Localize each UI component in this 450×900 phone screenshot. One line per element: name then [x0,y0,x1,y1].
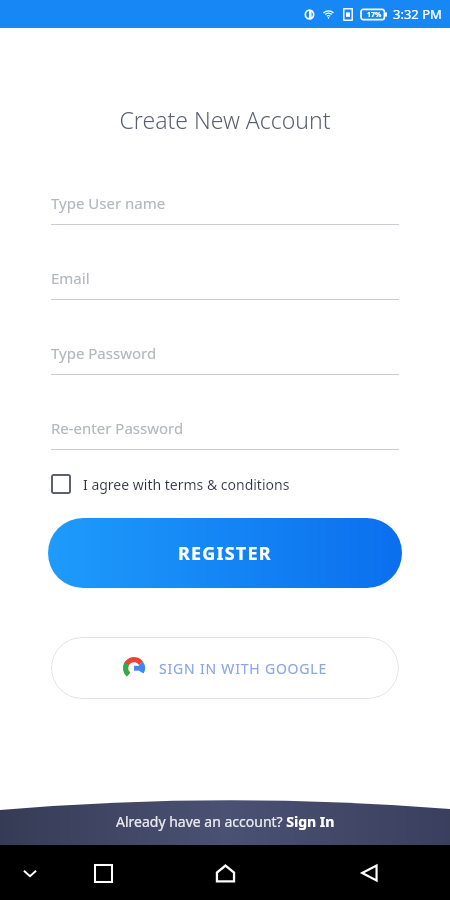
staticText: REGISTER [178,541,272,566]
button[interactable]: Type Password [51,343,399,375]
button[interactable]: I agree with terms & conditions [51,474,399,494]
button[interactable]: Email [51,268,399,300]
staticText: I agree with terms & conditions [83,475,290,494]
button[interactable]: Already have an account? Sign In [0,790,450,845]
button[interactable]: Re-enter Password [51,418,399,450]
staticText: Re-enter Password [51,418,184,438]
button[interactable]: REGISTER [48,518,402,588]
staticText: 17% [367,10,382,20]
staticText: Type User name [51,193,166,213]
staticText: Create New Account [0,104,450,135]
button[interactable]: SIGN IN WITH GOOGLE [51,637,399,699]
staticText: Already have an account? Sign In [116,812,335,831]
staticText: Email [51,268,90,288]
button[interactable]: Home [208,856,242,890]
button[interactable]: Back [352,856,386,890]
button[interactable]: Type User name [51,193,399,225]
button[interactable]: Recent apps [86,856,120,890]
staticText: 3:32 PM [393,5,442,23]
staticText: SIGN IN WITH GOOGLE [159,659,328,678]
staticText: Type Password [51,343,157,363]
button[interactable]: Hide keyboard [14,857,46,889]
